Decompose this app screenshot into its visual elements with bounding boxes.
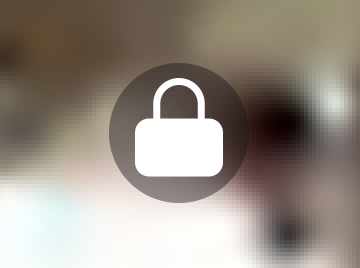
- button[interactable]: Locked: [109, 63, 249, 203]
